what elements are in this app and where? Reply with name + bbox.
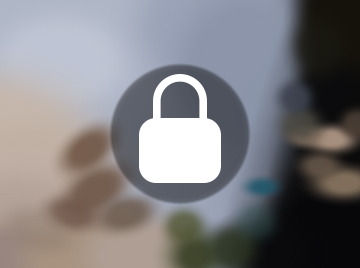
button[interactable]: Locked content bbox=[0, 0, 360, 268]
